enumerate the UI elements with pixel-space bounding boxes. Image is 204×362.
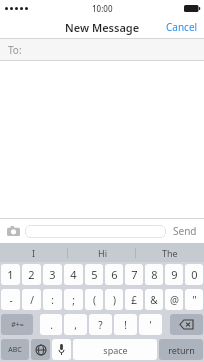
button[interactable]: :	[43, 289, 62, 310]
staticText: 7	[131, 267, 138, 282]
staticText: 9	[171, 267, 178, 282]
staticText: 6	[111, 267, 118, 282]
staticText: Cancel	[166, 20, 198, 34]
button[interactable]: "	[185, 289, 203, 310]
staticText: 5	[91, 267, 98, 282]
staticText: 10:00	[92, 3, 113, 14]
staticText: The	[162, 247, 178, 259]
button[interactable]: Send	[171, 224, 199, 238]
button[interactable]: 8	[145, 264, 163, 285]
button[interactable]: Camera	[5, 223, 21, 239]
staticText: )	[113, 293, 116, 307]
staticText: Hi	[98, 247, 107, 259]
button[interactable]: &	[145, 289, 163, 310]
button[interactable]: Dictate	[52, 339, 71, 360]
staticText: !	[124, 318, 127, 332]
other: Dictate	[52, 339, 71, 360]
button[interactable]: Cancel	[166, 16, 198, 38]
staticText: 2	[28, 267, 35, 282]
staticText: "	[192, 293, 197, 307]
staticText: ?	[98, 318, 103, 332]
staticText: 8	[151, 267, 158, 282]
button[interactable]	[25, 225, 166, 238]
button[interactable]: 9	[165, 264, 183, 285]
staticText: &	[150, 293, 158, 307]
button[interactable]: 4	[64, 264, 83, 285]
button[interactable]: 5	[85, 264, 103, 285]
button[interactable]: '	[139, 314, 162, 335]
button[interactable]: To:	[0, 39, 204, 60]
staticText: space	[103, 344, 128, 356]
button[interactable]: (	[85, 289, 103, 310]
staticText: I	[32, 247, 36, 259]
button[interactable]: )	[105, 289, 123, 310]
staticText: Send	[173, 224, 197, 238]
button[interactable]: !	[114, 314, 137, 335]
button[interactable]: ,	[64, 314, 87, 335]
staticText: return	[168, 344, 195, 356]
button[interactable]: The	[136, 243, 204, 262]
button[interactable]: Hi	[68, 243, 136, 262]
button[interactable]: 2	[22, 264, 41, 285]
button[interactable]: 3	[43, 264, 62, 285]
staticText: 1	[7, 267, 14, 282]
button[interactable]: #+=	[1, 314, 33, 335]
button[interactable]: Backspace	[170, 314, 203, 335]
staticText: £	[131, 293, 137, 307]
button[interactable]: return	[159, 339, 203, 360]
button[interactable]: ?	[89, 314, 112, 335]
staticText: -	[9, 293, 13, 307]
button[interactable]: ABC	[1, 339, 29, 360]
staticText: 0	[191, 267, 198, 282]
button[interactable]: -	[1, 289, 20, 310]
button[interactable]: 0	[185, 264, 203, 285]
staticText: To:	[8, 43, 22, 57]
button[interactable]: 6	[105, 264, 123, 285]
button[interactable]: 7	[125, 264, 143, 285]
button[interactable]: .	[40, 314, 62, 335]
staticText: .	[50, 318, 53, 332]
staticText: /	[30, 293, 34, 307]
staticText: :	[51, 293, 54, 307]
button[interactable]: space	[73, 339, 157, 360]
staticText: '	[149, 318, 152, 332]
staticText: ;	[72, 293, 75, 307]
button[interactable]: I	[0, 243, 68, 262]
staticText: #+=	[11, 320, 24, 330]
button[interactable]: Switch keyboard	[31, 339, 50, 360]
button[interactable]: ;	[64, 289, 83, 310]
button[interactable]: 1	[1, 264, 20, 285]
staticText: 3	[49, 267, 56, 282]
staticText: 4	[70, 267, 77, 282]
staticText: New Message	[65, 20, 140, 35]
button[interactable]: @	[165, 289, 183, 310]
staticText: @	[170, 293, 179, 307]
staticText: (	[93, 293, 96, 307]
other: Backspace	[170, 314, 203, 335]
other: Switch keyboard	[31, 339, 50, 360]
button[interactable]: /	[22, 289, 41, 310]
staticText: ABC	[8, 345, 22, 355]
button[interactable]: £	[125, 289, 143, 310]
staticText: ,	[74, 318, 77, 332]
